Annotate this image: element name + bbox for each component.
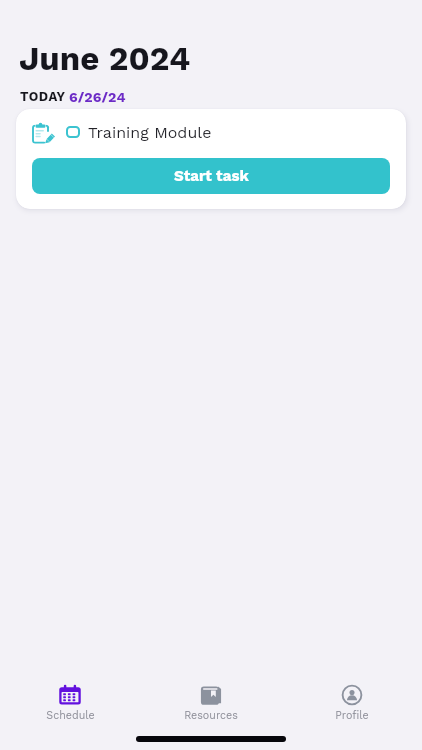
staticText: Training Module	[88, 123, 212, 142]
button[interactable]: Start task	[32, 158, 390, 194]
staticText: TODAY	[20, 89, 66, 104]
staticText: Profile	[335, 709, 369, 722]
staticText: 6/26/24	[69, 89, 126, 105]
button[interactable]: Resources tab	[140, 685, 281, 722]
staticText: Resources	[184, 709, 238, 722]
button[interactable]: Profile tab	[281, 685, 422, 722]
staticText: Start task	[174, 167, 249, 185]
button[interactable]: Training Module	[16, 109, 406, 209]
staticText: Schedule	[46, 709, 95, 722]
button[interactable]: Schedule tab	[0, 685, 140, 722]
staticText: June 2024	[19, 39, 191, 78]
